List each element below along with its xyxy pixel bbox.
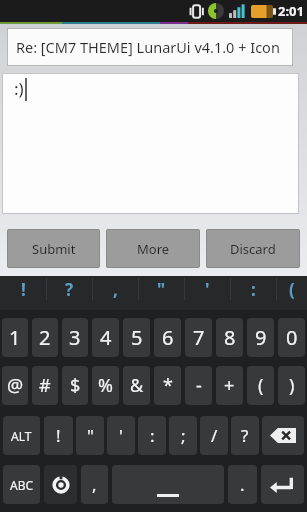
staticText: ( [258,373,264,398]
staticText: ) [289,373,295,398]
staticText: ? [65,278,74,301]
staticText: : [150,424,155,447]
button[interactable]: , [92,276,138,302]
button[interactable] [262,416,304,455]
button[interactable]: " [76,416,104,455]
button[interactable]: 8 [216,318,243,357]
button[interactable]: ' [184,276,230,302]
button[interactable]: & [123,366,150,405]
staticText: , [113,278,118,301]
button[interactable]: : [230,276,276,302]
staticText: / [211,424,218,447]
button[interactable]: $ [62,366,88,405]
staticText: ? [241,424,249,447]
button[interactable]: 4 [92,318,119,357]
button[interactable]: ? [46,276,92,302]
button[interactable] [261,465,304,504]
button[interactable]: 3 [62,318,88,357]
staticText: + [224,373,235,398]
button[interactable]: 5 [123,318,150,357]
button[interactable] [44,465,77,504]
button[interactable]: 9 [247,318,274,357]
staticText: ' [205,278,210,301]
button[interactable]: 1 [2,318,28,357]
button[interactable]: 6 [154,318,181,357]
staticText: , [92,473,97,496]
staticText: % [98,373,113,398]
button[interactable]: ( [247,366,274,405]
button[interactable]: 7 [185,318,212,357]
staticText: . [240,473,245,496]
staticText: & [130,373,144,398]
staticText: Re: [CM7 THEME] LunarUi v4.1.0 + Icon [16,37,280,57]
staticText: : [251,278,256,301]
button[interactable]: 2 [32,318,58,357]
staticText: 4 [100,324,112,351]
button[interactable]: ( [276,276,307,302]
button[interactable]: ALT [3,416,40,455]
staticText: :) [14,77,24,100]
staticText: 5 [131,324,143,351]
staticText: - [196,373,202,398]
button[interactable]: ? [231,416,259,455]
button[interactable] [112,465,224,504]
button[interactable]: - [185,366,212,405]
staticText: 2:01 [278,2,304,20]
staticText: " [87,424,94,447]
staticText: # [39,373,51,398]
button[interactable]: 0 [278,318,305,357]
button[interactable]: / [200,416,228,455]
staticText: 8 [224,324,236,351]
button[interactable]: ' [107,416,135,455]
staticText: ! [56,424,61,447]
button[interactable]: . [228,465,257,504]
button[interactable]: # [32,366,58,405]
staticText: 2 [39,324,51,351]
staticText: Submit [32,240,76,258]
button[interactable]: ! [0,276,46,302]
staticText: 0 [286,324,298,351]
button[interactable]: % [92,366,119,405]
button[interactable]: Submit [7,229,100,268]
staticText: 1 [9,324,21,351]
button[interactable]: ) [278,366,305,405]
button[interactable]: Re: [CM7 THEME] LunarUi v4.1.0 + Icon [7,28,293,66]
button[interactable]: ; [169,416,197,455]
staticText: ( [289,278,295,301]
staticText: Discard [230,240,276,258]
staticText: ABC [10,477,34,493]
staticText: 9 [255,324,267,351]
button[interactable]: More [106,229,200,268]
button[interactable]: " [138,276,184,302]
button[interactable]: * [154,366,181,405]
button[interactable]: Discard [206,229,300,268]
staticText: " [157,278,166,301]
staticText: @ [7,373,24,398]
staticText: ALT [11,428,32,444]
staticText: 7 [193,324,205,351]
button[interactable]: ABC [3,465,40,504]
staticText: ! [21,278,26,301]
staticText: ' [119,424,123,447]
button[interactable]: : [138,416,166,455]
staticText: 6 [162,324,174,351]
staticText: $ [70,373,81,398]
button[interactable]: ! [44,416,73,455]
button[interactable]: + [216,366,243,405]
button[interactable]: , [81,465,108,504]
staticText: * [163,373,173,398]
staticText: 3 [69,324,81,351]
button[interactable]: :) [2,73,299,214]
button[interactable]: @ [2,366,28,405]
staticText: More [137,240,170,258]
staticText: ; [181,424,186,447]
